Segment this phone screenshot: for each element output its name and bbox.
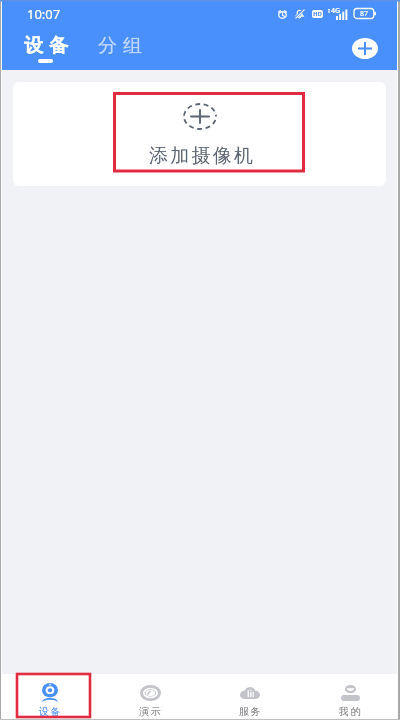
staticText: 87	[360, 9, 369, 19]
staticText: 10:07	[27, 5, 61, 23]
button[interactable]: Demo tab	[100, 683, 200, 720]
staticText: HD	[313, 10, 322, 18]
staticText: 4G	[331, 6, 341, 16]
button[interactable]: 设备	[21, 28, 71, 69]
button[interactable]: Service tab	[200, 683, 300, 720]
button[interactable]: Add device	[348, 34, 381, 63]
staticText: 设备	[21, 34, 71, 58]
staticText: 服务	[239, 705, 263, 718]
button[interactable]: Devices tab	[0, 683, 100, 720]
button[interactable]: 分组	[95, 28, 145, 69]
button[interactable]: 添加摄像机	[13, 82, 386, 186]
staticText: 我的	[339, 705, 363, 718]
staticText: 分组	[95, 34, 145, 58]
staticText: 添加摄像机	[148, 144, 254, 168]
button[interactable]: Profile tab	[300, 683, 400, 720]
staticText: 设备	[39, 705, 63, 718]
staticText: 演示	[139, 705, 163, 718]
